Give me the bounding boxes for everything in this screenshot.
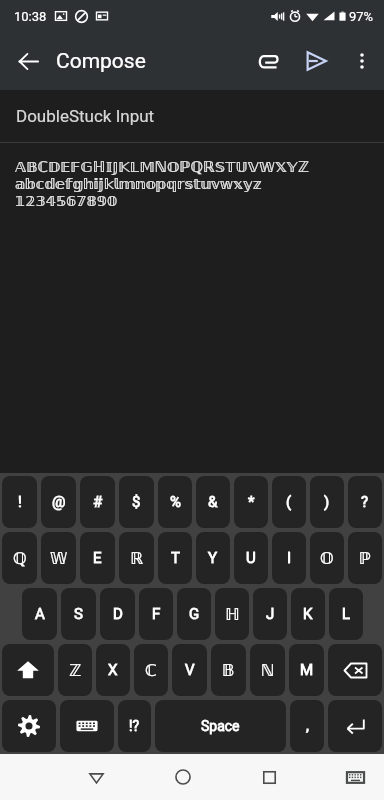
button[interactable]: L: [329, 588, 363, 640]
button[interactable]: ℙ: [348, 532, 382, 584]
button[interactable]: D: [100, 588, 135, 640]
staticText: !: [18, 493, 22, 511]
staticText: 𝕆: [320, 549, 334, 568]
button[interactable]: Back: [72, 754, 120, 800]
staticText: 𝟙𝟚𝟛𝟜𝟝𝟞𝟟𝟠𝟡𝟘: [15, 192, 118, 209]
button[interactable]: (: [272, 476, 306, 528]
button[interactable]: More options: [340, 39, 384, 83]
staticText: ℙ: [359, 549, 371, 568]
staticText: ℍ: [225, 605, 240, 624]
staticText: D: [113, 605, 123, 623]
button[interactable]: $: [119, 476, 154, 528]
staticText: V: [185, 661, 195, 679]
button[interactable]: *: [234, 476, 268, 528]
staticText: #: [93, 493, 103, 511]
button[interactable]: ,: [290, 700, 324, 752]
staticText: J: [266, 605, 275, 623]
button[interactable]: ?: [348, 476, 382, 528]
button[interactable]: 𝕆: [310, 532, 344, 584]
staticText: ℂ: [145, 661, 157, 680]
button[interactable]: DoubleStuck Input: [0, 90, 384, 142]
staticText: M: [300, 661, 314, 679]
staticText: $: [132, 493, 141, 511]
button[interactable]: Backspace: [328, 644, 382, 696]
staticText: ℝ: [130, 549, 143, 568]
staticText: A: [35, 605, 45, 623]
staticText: ): [324, 493, 330, 511]
staticText: @: [52, 493, 66, 511]
button[interactable]: E: [80, 532, 115, 584]
button[interactable]: 𝔹: [211, 644, 246, 696]
button[interactable]: ℕ: [250, 644, 285, 696]
button[interactable]: 𝕎: [41, 532, 76, 584]
button[interactable]: U: [234, 532, 268, 584]
button[interactable]: Y: [196, 532, 230, 584]
staticText: L: [342, 605, 351, 623]
staticText: *: [248, 493, 255, 511]
staticText: %: [170, 493, 181, 511]
button[interactable]: Settings: [2, 700, 56, 752]
button[interactable]: ℚ: [2, 532, 37, 584]
button[interactable]: Recent apps: [245, 754, 293, 800]
button[interactable]: ℝ: [119, 532, 154, 584]
button[interactable]: Shift: [2, 644, 54, 696]
staticText: ,: [306, 717, 309, 735]
button[interactable]: Home: [159, 754, 207, 800]
staticText: 𝔸𝔹ℂ𝔻𝔼𝔽𝔾ℍ𝕀𝕁𝕂𝕃𝕄ℕ𝕆ℙℚℝ𝕊𝕋𝕌𝕍𝕎𝕏𝕐ℤ: [15, 158, 309, 175]
button[interactable]: Send: [292, 37, 340, 85]
button[interactable]: %: [158, 476, 192, 528]
staticText: Y: [208, 549, 218, 567]
button[interactable]: J: [253, 588, 287, 640]
staticText: ℕ: [261, 661, 275, 680]
button[interactable]: X: [96, 644, 130, 696]
button[interactable]: K: [291, 588, 325, 640]
staticText: &: [208, 493, 218, 511]
button[interactable]: @: [41, 476, 76, 528]
staticText: 𝕒𝕓𝕔𝕕𝕖𝕗𝕘𝕙𝕚𝕛𝕜𝕝𝕞𝕟𝕠𝕡𝕢𝕣𝕤𝕥𝕦𝕧𝕨𝕩𝕪𝕫: [15, 175, 262, 192]
staticText: !?: [129, 718, 140, 734]
staticText: U: [246, 549, 256, 567]
button[interactable]: ℤ: [58, 644, 92, 696]
staticText: S: [74, 605, 83, 623]
button[interactable]: ℍ: [215, 588, 249, 640]
button[interactable]: ): [310, 476, 344, 528]
button[interactable]: T: [158, 532, 192, 584]
staticText: 10:38: [14, 9, 47, 24]
button[interactable]: Switch keyboard: [60, 700, 114, 752]
staticText: ?: [361, 493, 369, 511]
button[interactable]: M: [289, 644, 324, 696]
button[interactable]: G: [177, 588, 211, 640]
staticText: (: [286, 493, 292, 511]
button[interactable]: Enter: [328, 700, 382, 752]
staticText: Space: [201, 718, 240, 734]
button[interactable]: Attach file: [244, 37, 292, 85]
staticText: T: [171, 549, 180, 567]
button[interactable]: A: [22, 588, 57, 640]
button[interactable]: #: [80, 476, 115, 528]
staticText: E: [93, 549, 102, 567]
staticText: DoubleStuck Input: [16, 106, 155, 126]
staticText: X: [108, 661, 118, 679]
staticText: Compose: [56, 49, 146, 74]
staticText: G: [189, 605, 200, 623]
button[interactable]: Back: [0, 33, 56, 89]
button[interactable]: Space: [155, 700, 286, 752]
button[interactable]: !: [2, 476, 37, 528]
staticText: 97%: [349, 9, 374, 24]
button[interactable]: &: [196, 476, 230, 528]
button[interactable]: ℂ: [134, 644, 168, 696]
staticText: K: [303, 605, 313, 623]
button[interactable]: Keyboard: [331, 754, 379, 800]
button[interactable]: I: [272, 532, 306, 584]
staticText: I: [287, 549, 292, 567]
staticText: 𝔹: [222, 661, 235, 680]
button[interactable]: V: [172, 644, 207, 696]
staticText: F: [152, 605, 161, 623]
button[interactable]: F: [139, 588, 173, 640]
staticText: 𝕎: [50, 549, 68, 568]
staticText: ℤ: [69, 661, 82, 680]
button[interactable]: S: [61, 588, 96, 640]
button[interactable]: !?: [118, 700, 151, 752]
staticText: ℚ: [13, 549, 27, 568]
